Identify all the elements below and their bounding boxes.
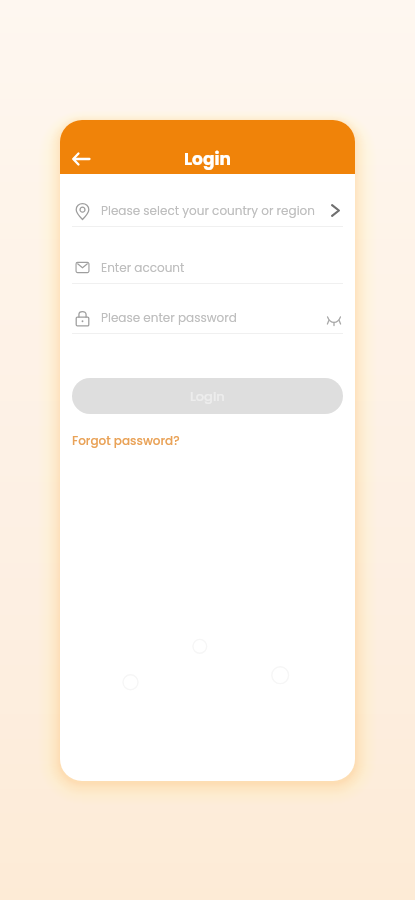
button[interactable]: Please select your country or region — [72, 195, 343, 226]
button[interactable]: Show password — [321, 307, 343, 329]
button[interactable]: Please enter password — [72, 302, 343, 333]
staticText: Login — [190, 387, 225, 405]
button[interactable]: Forgot password? — [72, 430, 180, 451]
staticText: Login — [184, 147, 231, 171]
button[interactable]: Back — [61, 140, 101, 178]
button[interactable]: Enter account — [72, 251, 343, 283]
staticText: Forgot password? — [72, 432, 180, 449]
staticText: Please enter password — [101, 309, 321, 326]
button[interactable]: Select country or region — [321, 200, 343, 222]
button[interactable]: Login — [72, 378, 343, 414]
staticText: Please select your country or region — [101, 202, 321, 219]
staticText: Enter account — [101, 259, 343, 276]
